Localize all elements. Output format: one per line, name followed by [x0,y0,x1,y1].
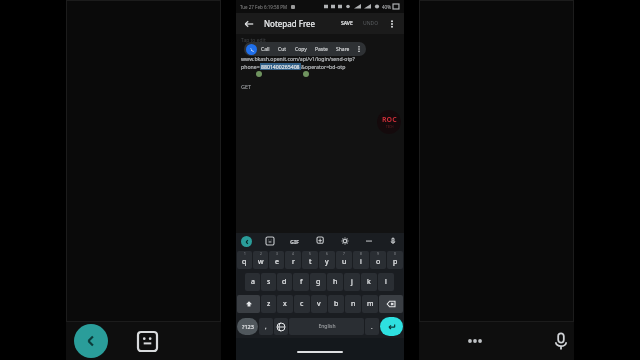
button[interactable]: Stickers [132,326,162,356]
button[interactable]: Share [332,44,354,55]
button[interactable]: Backspace [379,295,403,313]
button[interactable]: 0 [387,251,403,269]
button[interactable]: c [294,295,310,313]
button[interactable]: x [277,295,293,313]
button[interactable]: Navigate back [241,16,257,32]
button[interactable]: a [245,273,260,291]
button[interactable]: Open features [241,236,252,247]
button[interactable]: l [378,273,394,291]
staticText: 1 [244,252,246,256]
staticText: ROC [382,115,397,125]
button[interactable]: English [289,318,364,335]
button[interactable]: Call [246,44,257,55]
button[interactable]: 7 [336,251,352,269]
staticText: m [367,299,374,309]
staticText: c [300,299,304,309]
staticText: Tap to edit [241,37,266,44]
staticText: 2 [260,252,262,256]
button[interactable]: Settings [339,235,351,247]
staticText: 5 [309,252,311,256]
button[interactable]: 8801400265408 [261,63,300,70]
button[interactable]: UNDO [360,18,382,29]
staticText: r [292,257,295,267]
staticText: 40% [382,4,391,10]
button[interactable]: z [261,295,276,313]
staticText: GIF [290,238,300,245]
staticText: s [267,277,271,287]
staticText: 8801400265408 [261,63,300,70]
staticText: Call [261,46,270,53]
button[interactable]: Call [257,44,274,55]
button[interactable]: m [362,295,378,313]
staticText: SAVE [341,20,353,27]
staticText: Copy [295,46,307,53]
staticText: i [360,257,362,267]
staticText: u [342,257,347,267]
staticText: d [282,277,287,287]
button[interactable]: 5 [302,251,318,269]
staticText: English [318,323,336,330]
staticText: Paste [315,46,328,53]
button[interactable]: j [344,273,360,291]
staticText: x [283,299,287,309]
button[interactable]: d [277,273,292,291]
button[interactable]: h [327,273,343,291]
staticText: 0 [394,252,396,256]
button[interactable]: Paste [311,44,332,55]
staticText: 4 [292,252,294,256]
button[interactable]: 3 [269,251,284,269]
button[interactable]: , [259,318,273,335]
button[interactable]: Back [74,324,108,358]
button[interactable]: Change language [274,318,288,335]
staticText: h [333,277,338,287]
staticText: Share [336,46,350,53]
staticText: 8 [360,252,362,256]
staticText: f [300,277,303,287]
staticText: g [316,277,321,287]
button[interactable]: 4 [285,251,301,269]
button[interactable]: More options [459,325,491,357]
staticText: UNDO [363,20,379,27]
staticText: . [371,323,373,331]
staticText: k [367,277,371,287]
button[interactable]: GIF [288,236,302,247]
button[interactable]: 6 [319,251,335,269]
staticText: z [267,299,271,309]
button[interactable]: n [345,295,361,313]
staticText: a [251,277,255,287]
staticText: q [242,257,247,267]
button[interactable]: 8 [353,251,369,269]
button[interactable]: k [361,273,377,291]
button[interactable]: Shift [237,295,260,313]
button[interactable]: ?123 [237,318,258,335]
button[interactable]: Enter [380,317,403,336]
button[interactable]: Stickers [264,235,276,247]
button[interactable]: Translate [315,235,327,247]
button[interactable]: b [328,295,344,313]
button[interactable]: More actions [354,44,364,54]
button[interactable]: v [311,295,327,313]
staticText: Cut [278,46,287,53]
staticText: TECH [386,125,394,129]
button[interactable]: f [293,273,309,291]
button[interactable]: Copy [291,44,311,55]
button[interactable]: s [261,273,276,291]
staticText: v [317,299,321,309]
button[interactable]: 2 [253,251,268,269]
staticText: t [309,257,312,267]
button[interactable]: 9 [370,251,386,269]
button[interactable]: Voice input [387,235,399,247]
button[interactable]: More options [385,17,399,31]
button[interactable]: . [365,318,379,335]
staticText: j [351,277,353,287]
staticText: p [393,257,398,267]
staticText: GET [241,83,252,90]
staticText: phone= [241,63,260,70]
button[interactable]: g [310,273,326,291]
button[interactable]: 1 [237,251,252,269]
button[interactable]: More [363,235,375,247]
button[interactable]: SAVE [338,18,356,29]
button[interactable]: Cut [274,44,291,55]
button[interactable]: Microphone [547,325,574,357]
staticText: 3 [276,252,278,256]
